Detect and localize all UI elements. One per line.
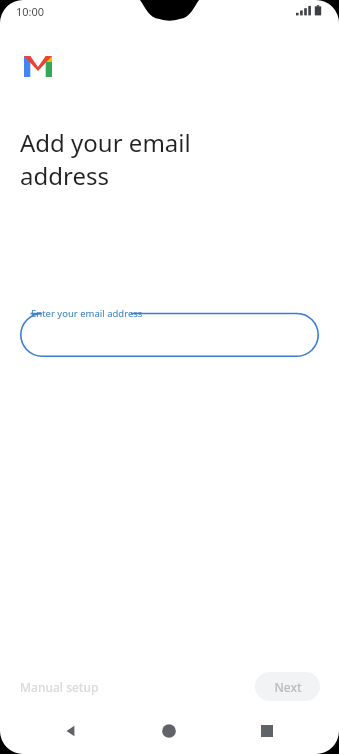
staticText: Next	[274, 679, 302, 695]
button[interactable]: Enter your email address	[20, 300, 319, 357]
button[interactable]: Home	[151, 713, 187, 749]
button[interactable]: Manual setup	[12, 673, 107, 701]
button[interactable]: Recent apps	[249, 713, 285, 749]
staticText: Manual setup	[20, 679, 99, 695]
staticText: 10:00	[16, 4, 45, 19]
button[interactable]: Next	[255, 672, 320, 701]
staticText: Add your email address	[20, 126, 191, 192]
staticText: Enter your email address	[31, 307, 143, 320]
button[interactable]: Back	[53, 713, 89, 749]
